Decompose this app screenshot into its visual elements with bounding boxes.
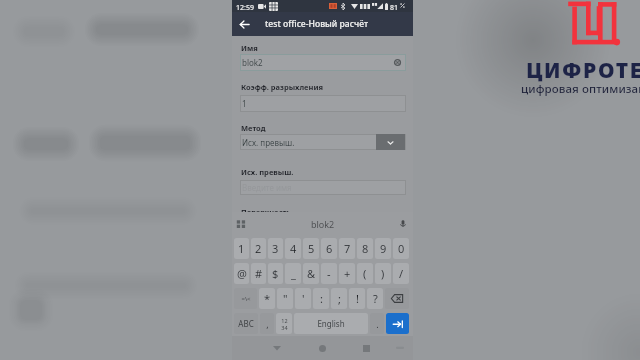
staticText: / [399,266,404,281]
staticText: Метод [241,123,266,133]
button[interactable]: Enter [386,313,409,334]
button[interactable]: - [321,263,337,284]
staticText: ABC [238,318,254,329]
button[interactable]: 0 [393,238,409,259]
button[interactable]: 12 34 [276,313,292,334]
button[interactable]: ; [331,288,347,309]
button[interactable]: 9 [375,238,391,259]
button[interactable]: Hide keyboard [269,340,285,356]
button[interactable]: Backspace [385,288,409,309]
button[interactable]: ABC [234,313,258,334]
staticText: blok2 [311,218,335,230]
staticText: 6 [326,241,333,256]
staticText: 9 [380,241,387,256]
staticText: 81 [390,3,399,13]
button[interactable]: _ [285,263,301,284]
button[interactable]: 4 [285,238,301,259]
staticText: 8 [362,241,369,256]
button[interactable]: $ [268,263,283,284]
button[interactable]: 8 [357,238,373,259]
staticText: 0 [398,241,405,256]
button[interactable]: ' [295,288,311,309]
staticText: Коэфф. разрыхления [241,82,323,92]
button[interactable]: * [259,288,275,309]
button[interactable]: =\< [234,288,257,309]
staticText: Исх. превыш. [241,167,294,177]
button[interactable]: ) [375,263,391,284]
button[interactable]: 7 [339,238,355,259]
button[interactable]: / [393,263,409,284]
button[interactable]: Voice input [398,219,408,229]
staticText: ( [363,266,367,281]
button[interactable]: + [339,263,355,284]
button[interactable]: & [303,263,319,284]
staticText: test office-Новый расчёт [265,18,369,30]
staticText: Исх. превыш. [242,137,295,148]
button[interactable]: ! [349,288,365,309]
button[interactable]: Введите имя [240,180,406,195]
staticText: 7 [344,241,351,256]
staticText: 4 [290,241,297,256]
staticText: : [320,291,323,306]
staticText: + [344,266,351,281]
staticText: ? [373,291,378,306]
staticText: Поверхность [241,207,291,217]
staticText: # [255,266,263,281]
staticText: 1 [238,241,245,256]
button[interactable]: Back [232,12,256,36]
button[interactable]: Open method dropdown [376,134,405,150]
button[interactable]: : [313,288,329,309]
button[interactable]: 2 [251,238,266,259]
button[interactable]: , [260,313,274,334]
staticText: English [317,318,345,329]
staticText: " [283,291,288,306]
staticText: 12 34 [281,317,288,331]
button[interactable]: 1 [234,238,249,259]
staticText: 1 [242,98,247,109]
staticText: 12:59 [236,3,254,13]
button[interactable]: 1 [240,95,406,112]
button[interactable]: Исх. превыш. [240,134,406,150]
button[interactable]: Keyboard switcher [236,219,246,229]
button[interactable]: Home [314,340,330,356]
staticText: 2 [255,241,262,256]
staticText: $ [272,266,279,281]
staticText: blok2 [242,57,263,68]
staticText: . [376,318,379,330]
staticText: 3 [272,241,279,256]
staticText: =\< [241,295,251,303]
staticText: ; [338,291,341,306]
staticText: * [264,291,271,306]
staticText: цифровая оптимизация [521,81,640,97]
staticText: , [266,318,269,330]
button[interactable]: " [277,288,293,309]
button[interactable]: @ [234,263,249,284]
staticText: 5 [308,241,315,256]
button[interactable]: # [251,263,266,284]
staticText: ) [381,266,385,281]
button[interactable]: . [370,313,384,334]
staticText: @ [237,266,247,281]
button[interactable]: 6 [321,238,337,259]
button[interactable]: 3 [268,238,283,259]
staticText: ' [302,291,305,306]
staticText: Имя [241,43,258,53]
button[interactable]: English [294,313,368,334]
button[interactable]: ( [357,263,373,284]
staticText: ЦИФРОТЕХ [526,56,640,85]
staticText: ! [356,291,359,306]
staticText: - [327,266,331,281]
staticText: & [307,266,316,281]
button[interactable]: blok2 [240,54,406,71]
button[interactable]: Recent apps [358,340,374,356]
staticText: _ [291,266,296,281]
button[interactable]: 5 [303,238,319,259]
button[interactable]: ? [367,288,383,309]
